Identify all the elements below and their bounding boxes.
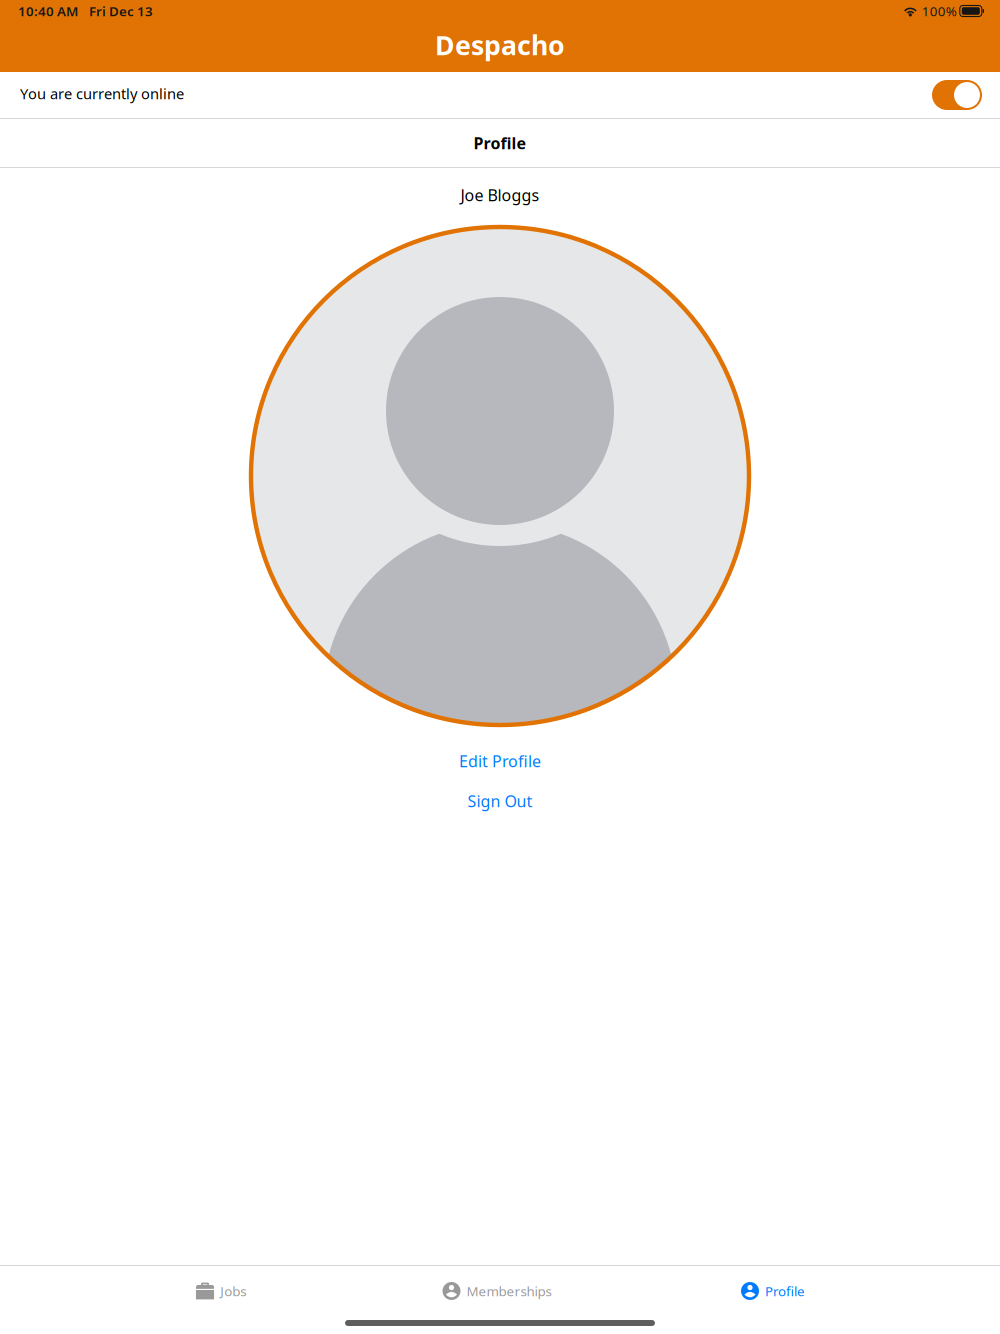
- button[interactable]: Profile: [635, 1282, 911, 1300]
- button[interactable]: Memberships: [359, 1282, 635, 1300]
- staticText: Profile: [473, 132, 526, 154]
- staticText: Joe Bloggs: [460, 184, 539, 206]
- button[interactable]: You are currently online: [0, 72, 1000, 118]
- staticText: Fri Dec 13: [89, 2, 153, 20]
- staticText: Profile: [765, 1282, 805, 1300]
- staticText: Jobs: [220, 1282, 246, 1300]
- staticText: Edit Profile: [459, 750, 541, 772]
- staticText: Memberships: [466, 1282, 551, 1300]
- staticText: 100%: [922, 2, 957, 20]
- staticText: Despacho: [435, 27, 565, 63]
- button[interactable]: Jobs: [83, 1282, 359, 1300]
- button[interactable]: Edit Profile: [459, 750, 541, 772]
- button[interactable]: Sign Out: [467, 790, 532, 812]
- staticText: You are currently online: [20, 84, 184, 103]
- staticText: Sign Out: [467, 790, 532, 812]
- staticText: 10:40 AM: [18, 2, 78, 20]
